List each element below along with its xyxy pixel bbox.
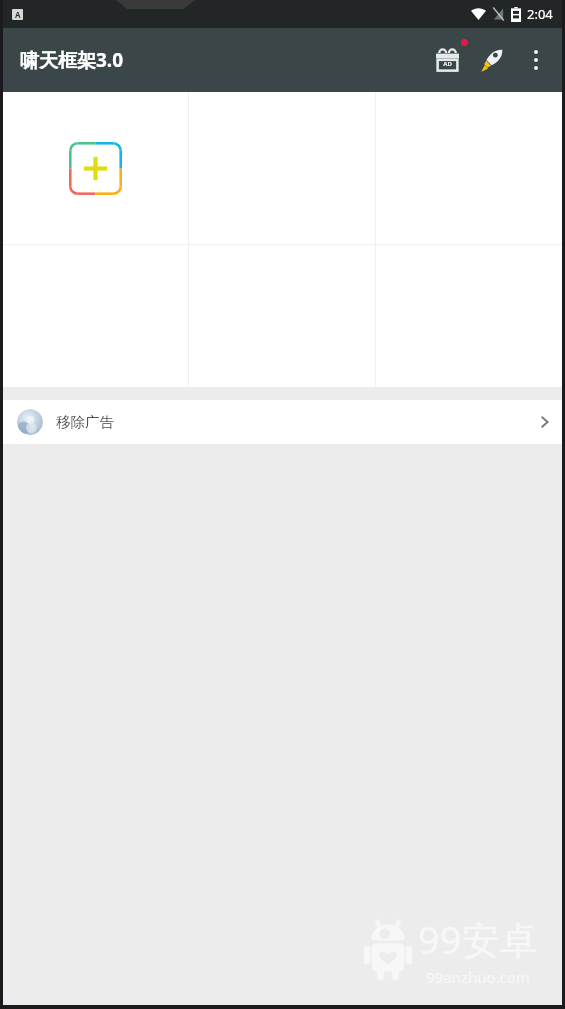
- staticText: A: [15, 9, 21, 20]
- button[interactable]: 移除广告: [3, 400, 562, 444]
- staticText: 移除广告: [56, 413, 114, 431]
- button[interactable]: More options: [514, 38, 558, 82]
- staticText: AD: [443, 60, 452, 68]
- button[interactable]: Add: [69, 142, 122, 195]
- staticText: 2:04: [527, 5, 553, 23]
- staticText: 啸天框架3.0: [20, 47, 124, 73]
- button[interactable]: Boost: [470, 38, 514, 82]
- staticText: 99安卓: [418, 913, 538, 965]
- staticText: 99anzhuo.com: [426, 967, 530, 987]
- button[interactable]: Ad gift: [424, 37, 470, 83]
